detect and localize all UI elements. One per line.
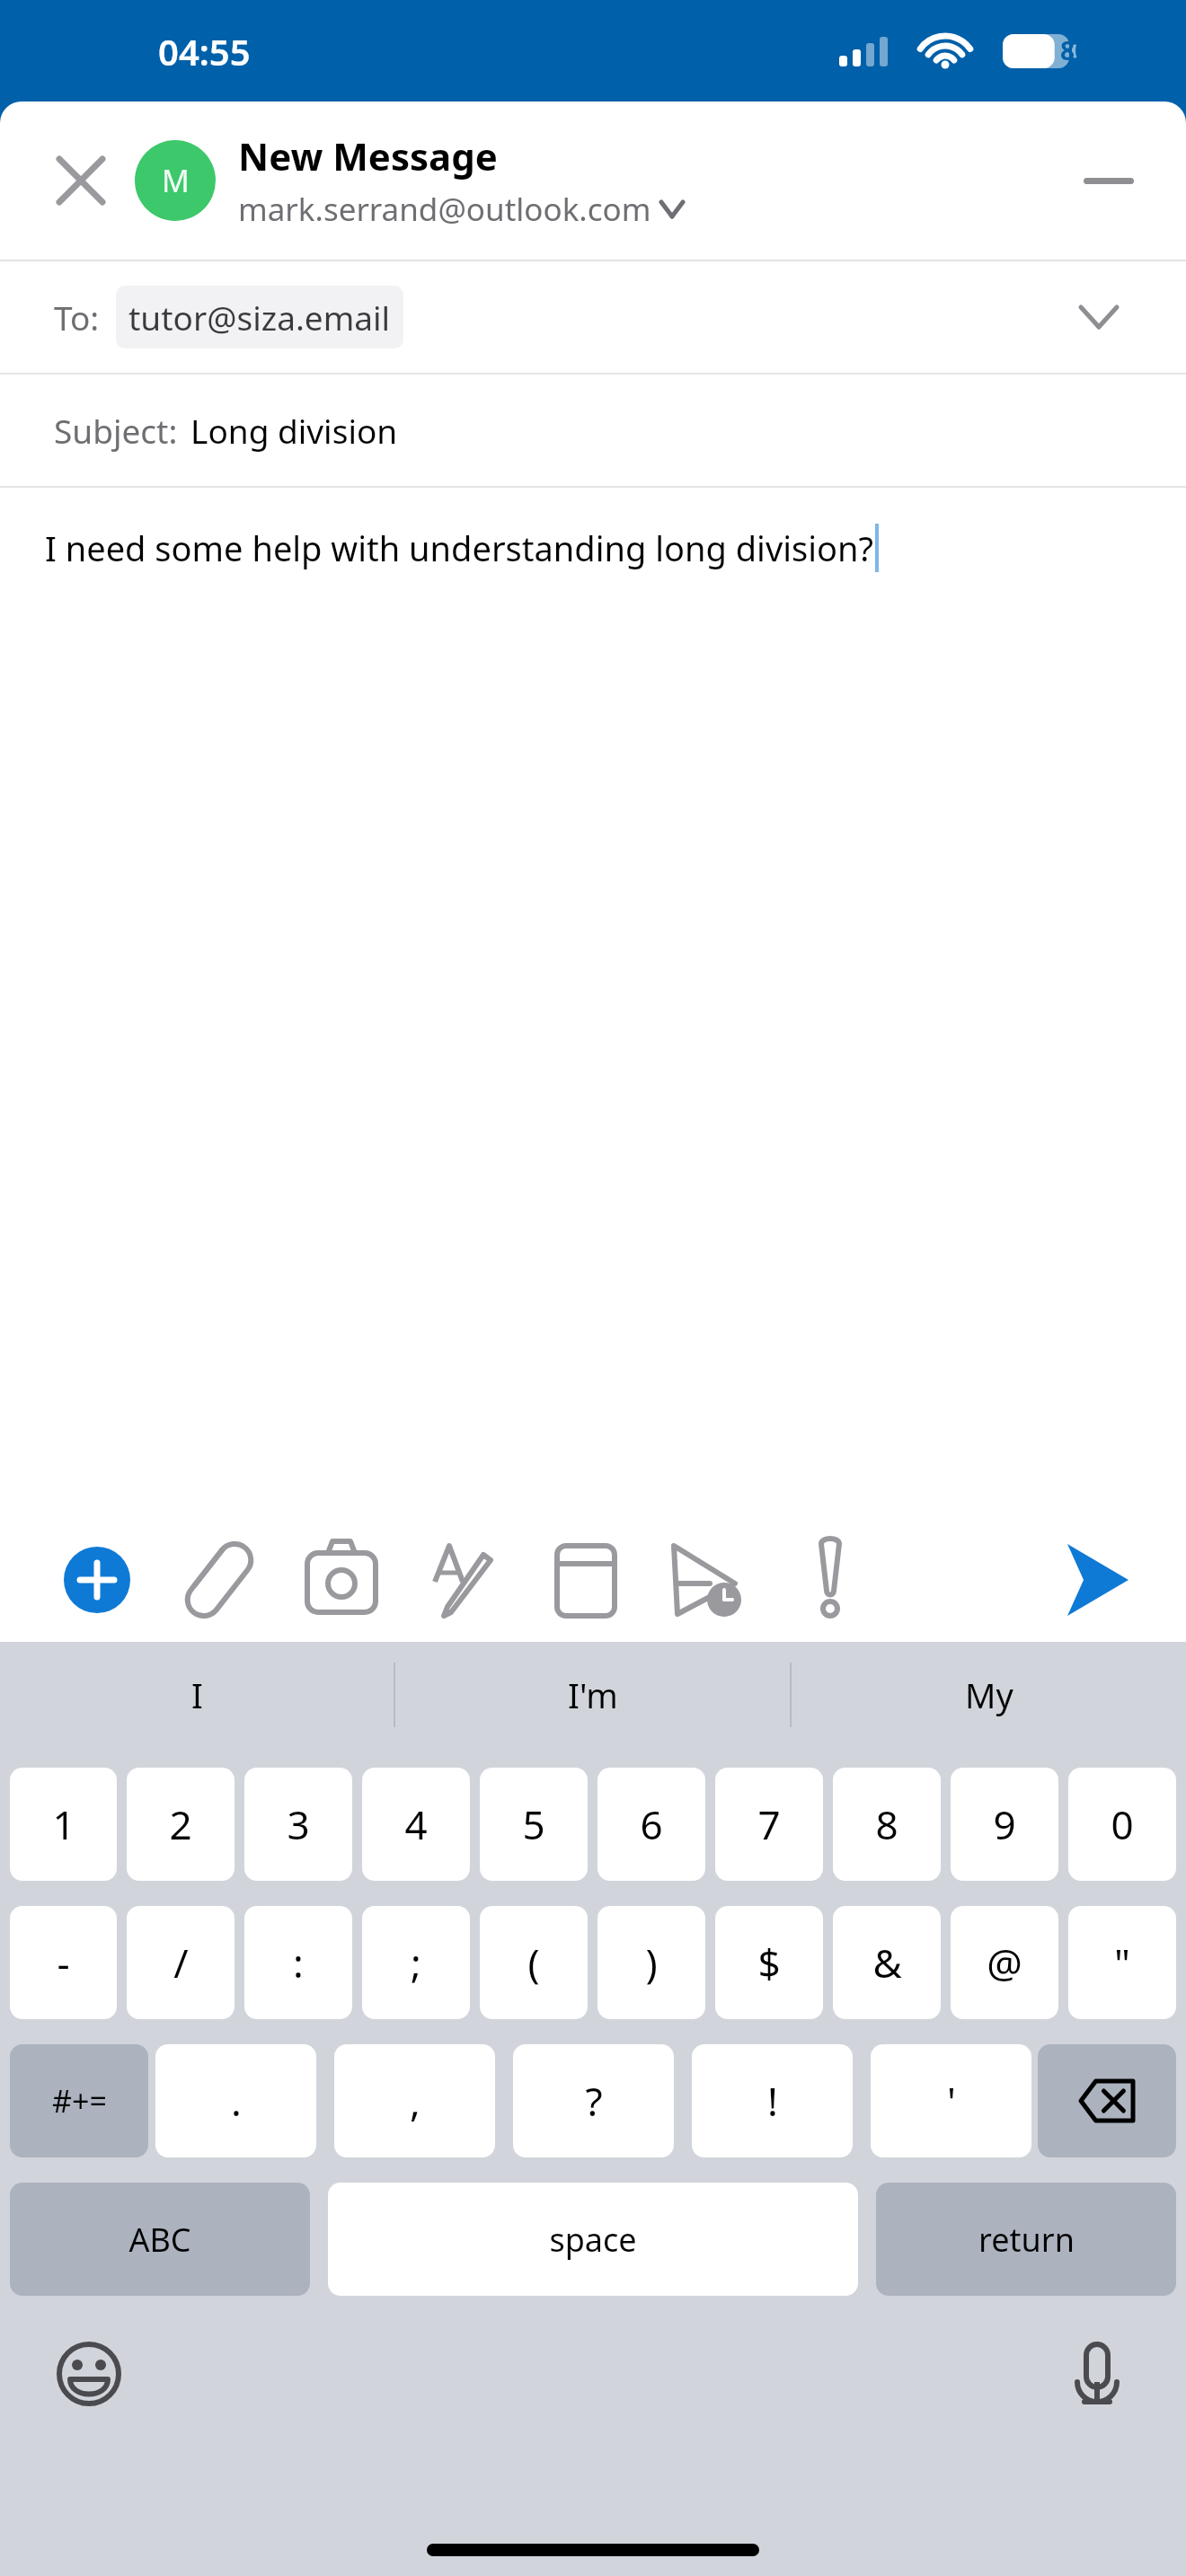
button[interactable]: (: [480, 1906, 588, 2025]
button[interactable]: Send: [1053, 1537, 1139, 1623]
button[interactable]: ,: [334, 2044, 495, 2163]
staticText: -: [57, 1936, 70, 1989]
staticText: ,: [410, 2074, 420, 2128]
button[interactable]: ': [871, 2044, 1031, 2163]
button[interactable]: ): [597, 1906, 705, 2025]
button[interactable]: I: [0, 1642, 394, 1748]
button[interactable]: 4: [362, 1768, 470, 1886]
staticText: 8: [875, 1797, 898, 1851]
button[interactable]: /: [127, 1906, 235, 2025]
staticText: Long division: [190, 408, 398, 453]
button[interactable]: return: [876, 2183, 1176, 2301]
button[interactable]: Add attachment: [36, 1518, 158, 1642]
staticText: return: [978, 2218, 1075, 2262]
staticText: :: [293, 1936, 304, 1989]
button[interactable]: ABC: [10, 2183, 310, 2301]
staticText: tutor@siza.email: [128, 295, 391, 340]
button[interactable]: 8: [833, 1768, 941, 1886]
staticText: I'm: [568, 1672, 618, 1718]
staticText: ABC: [128, 2218, 191, 2262]
staticText: $: [757, 1936, 781, 1989]
button[interactable]: Attach file: [158, 1518, 280, 1642]
staticText: My: [965, 1672, 1013, 1718]
staticText: 0: [1111, 1797, 1134, 1851]
staticText: ): [645, 1936, 658, 1989]
staticText: ;: [411, 1936, 421, 1989]
button[interactable]: ": [1068, 1906, 1176, 2025]
button[interactable]: Minimize: [1073, 145, 1145, 216]
staticText: (: [527, 1936, 540, 1989]
staticText: New Message: [238, 130, 498, 181]
staticText: 3: [287, 1797, 310, 1851]
button[interactable]: 6: [597, 1768, 705, 1886]
staticText: @: [987, 1936, 1022, 1989]
button[interactable]: 7: [715, 1768, 823, 1886]
button[interactable]: @: [951, 1906, 1058, 2025]
button[interactable]: 2: [127, 1768, 235, 1886]
staticText: 80: [1060, 33, 1090, 67]
staticText: M: [162, 160, 190, 201]
staticText: 5: [522, 1797, 545, 1851]
button[interactable]: !: [692, 2044, 853, 2163]
button[interactable]: My: [792, 1642, 1186, 1748]
staticText: #+=: [52, 2080, 107, 2122]
staticText: /: [173, 1936, 189, 1989]
staticText: 9: [993, 1797, 1016, 1851]
staticText: ": [1114, 1936, 1130, 1989]
button[interactable]: 9: [951, 1768, 1058, 1886]
button[interactable]: To:: [0, 261, 1186, 373]
button[interactable]: I need some help with understanding long…: [0, 488, 1186, 1518]
button[interactable]: ?: [513, 2044, 674, 2163]
staticText: I need some help with understanding long…: [45, 525, 873, 571]
staticText: space: [549, 2218, 637, 2262]
button[interactable]: Emoji: [50, 2335, 128, 2413]
staticText: 4: [404, 1797, 428, 1851]
button[interactable]: -: [10, 1906, 117, 2025]
button[interactable]: 5: [480, 1768, 588, 1886]
button[interactable]: mark.serrand@outlook.com: [238, 188, 683, 231]
button[interactable]: Formatting: [403, 1518, 525, 1642]
staticText: 1: [52, 1797, 75, 1851]
staticText: ': [947, 2074, 956, 2128]
button[interactable]: $: [715, 1906, 823, 2025]
staticText: To:: [54, 295, 100, 340]
button[interactable]: Importance: [769, 1518, 891, 1642]
staticText: 2: [169, 1797, 192, 1851]
button[interactable]: Camera: [280, 1518, 403, 1642]
button[interactable]: ;: [362, 1906, 470, 2025]
button[interactable]: #+=: [10, 2044, 148, 2163]
button[interactable]: Insert table: [525, 1518, 647, 1642]
button[interactable]: Close: [47, 146, 115, 215]
button[interactable]: Dictate: [1058, 2335, 1136, 2413]
staticText: 04:55: [158, 27, 251, 75]
staticText: mark.serrand@outlook.com: [238, 188, 651, 231]
button[interactable]: I'm: [395, 1642, 790, 1748]
button[interactable]: Send later: [647, 1518, 769, 1642]
staticText: &: [872, 1936, 902, 1989]
staticText: I: [191, 1672, 203, 1718]
button[interactable]: &: [833, 1906, 941, 2025]
button[interactable]: .: [155, 2044, 316, 2163]
staticText: .: [231, 2074, 242, 2128]
staticText: 7: [757, 1797, 781, 1851]
other: Expand recipients: [1067, 286, 1130, 348]
staticText: Subject:: [54, 408, 178, 453]
staticText: !: [767, 2074, 778, 2128]
button[interactable]: Subject:: [0, 375, 1186, 486]
button[interactable]: space: [328, 2183, 858, 2301]
button[interactable]: :: [244, 1906, 352, 2025]
button[interactable]: 0: [1068, 1768, 1176, 1886]
button[interactable]: 3: [244, 1768, 352, 1886]
button[interactable]: 1: [10, 1768, 117, 1886]
staticText: 6: [640, 1797, 663, 1851]
button[interactable]: Backspace: [1038, 2044, 1176, 2163]
staticText: ?: [585, 2074, 603, 2128]
